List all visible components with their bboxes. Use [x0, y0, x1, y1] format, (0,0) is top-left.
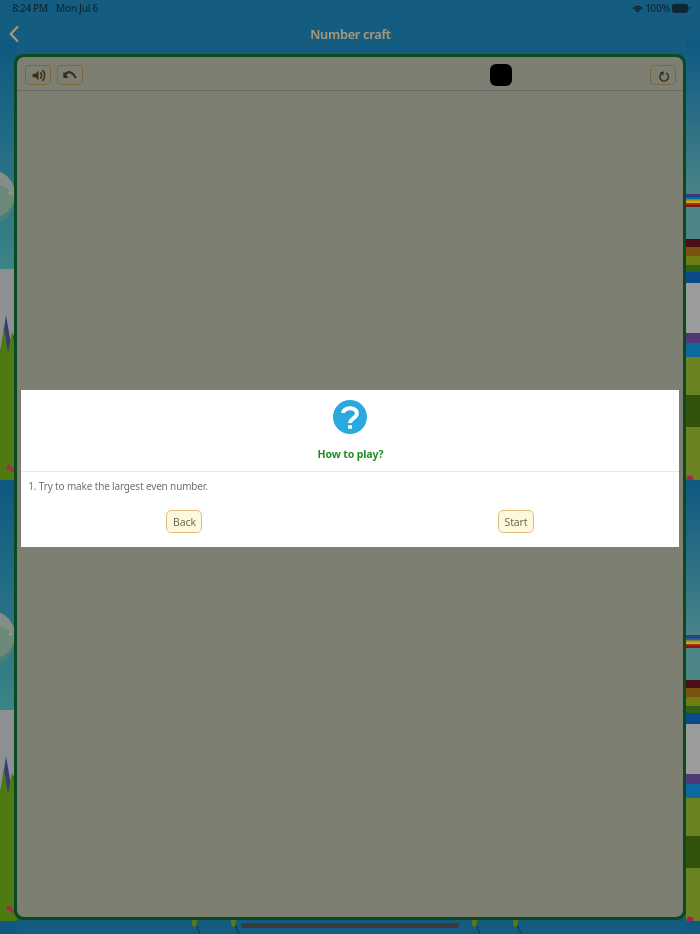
button[interactable]: Start [498, 510, 534, 533]
staticText: 8:24 PM [12, 1, 48, 15]
button[interactable]: Undo [57, 65, 83, 85]
staticText: 1. Try to make the largest even number. [28, 479, 208, 493]
staticText: Mon Jul 6 [56, 1, 98, 15]
button[interactable]: Sound [25, 65, 51, 85]
staticText: Start [504, 515, 528, 529]
staticText: Back [173, 515, 196, 529]
button[interactable]: Restart [650, 65, 676, 85]
button[interactable]: Back [0, 17, 30, 47]
button[interactable]: Back [166, 510, 202, 533]
staticText: How to play? [317, 447, 384, 461]
staticText: 100% [645, 1, 670, 15]
staticText: Number craft [310, 25, 391, 42]
